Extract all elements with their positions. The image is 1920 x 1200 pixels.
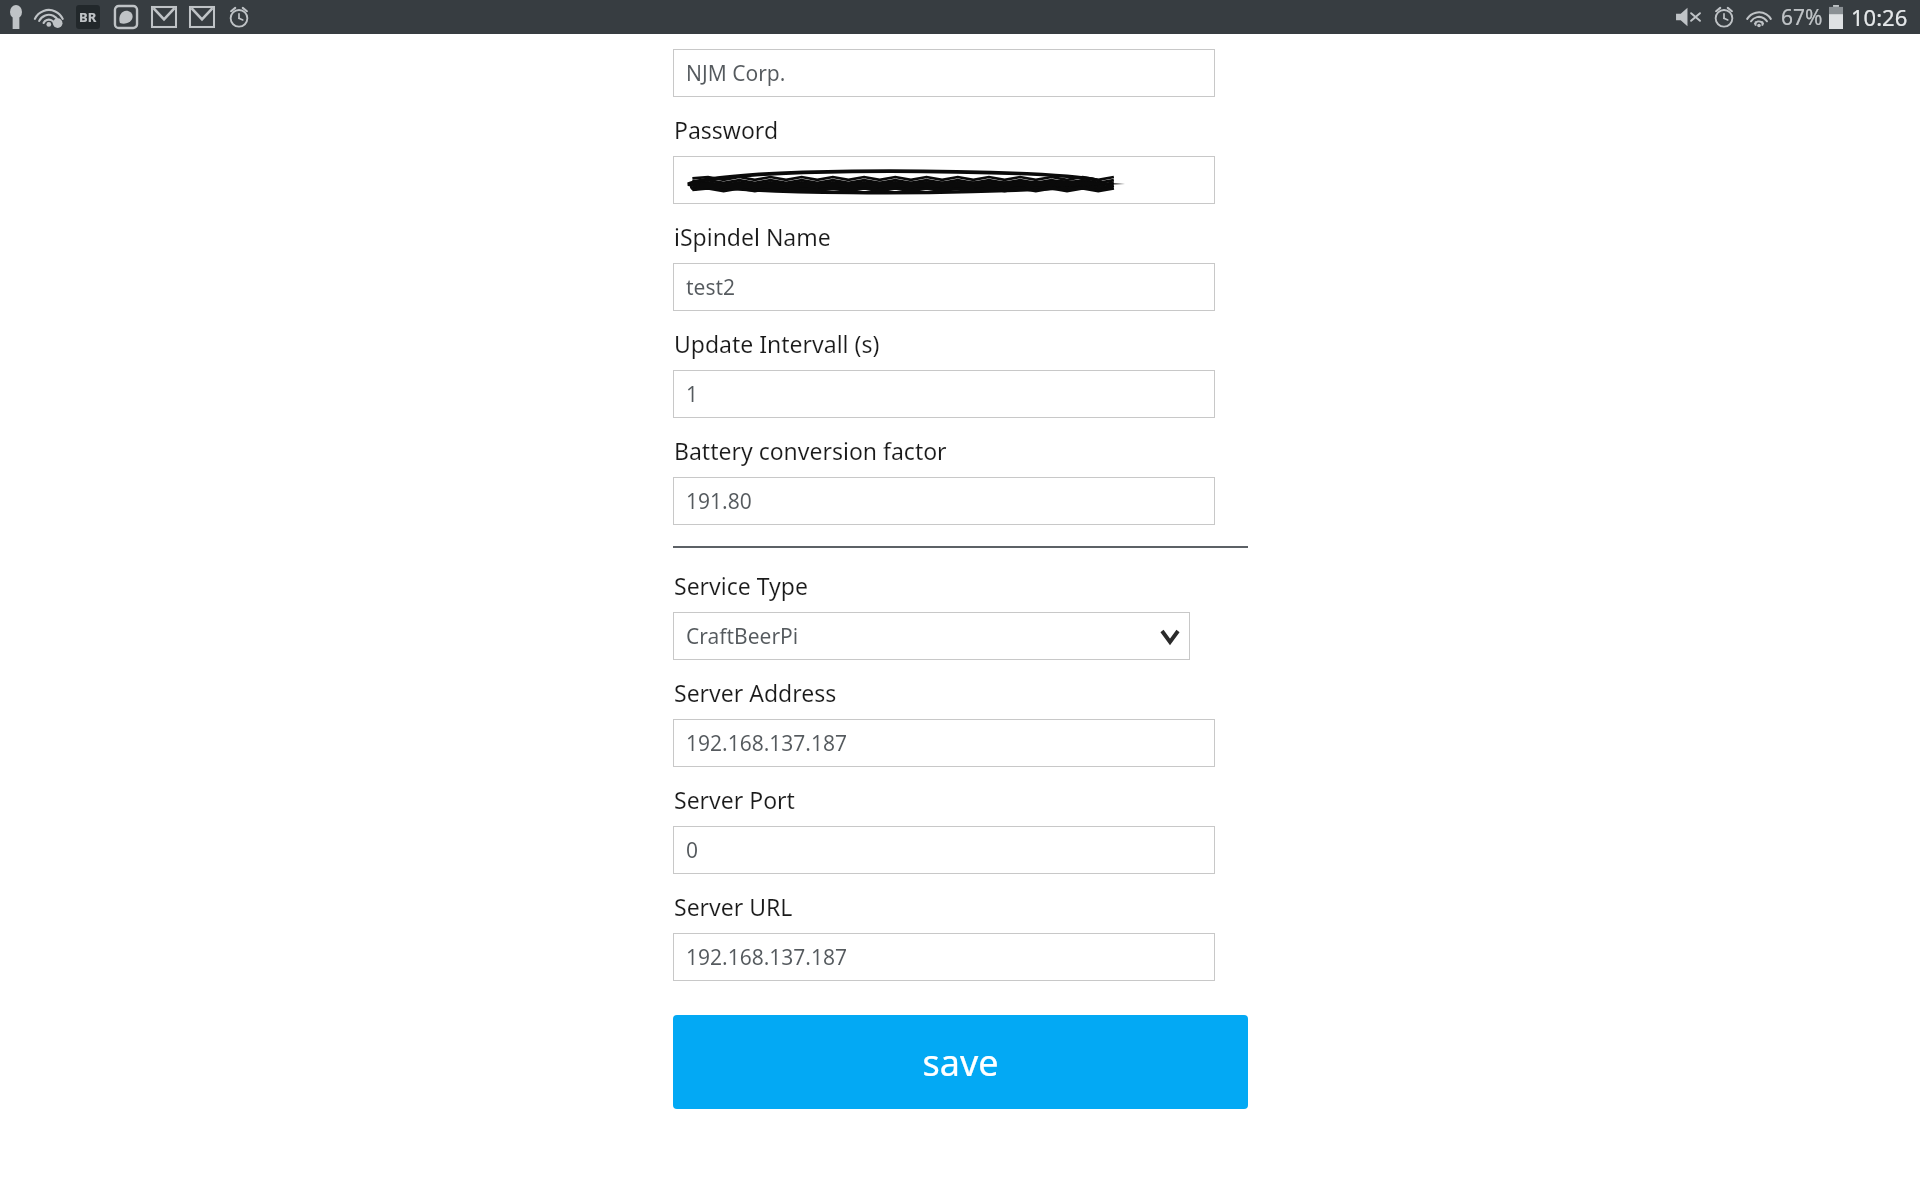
button[interactable]: Service Type dropdown: [673, 612, 1190, 660]
staticText: Password: [674, 114, 779, 145]
staticText: 192.168.137.187: [686, 729, 848, 758]
button[interactable]: test2: [673, 263, 1215, 311]
button[interactable]: 192.168.137.187: [673, 933, 1215, 981]
staticText: Update Intervall (s): [674, 328, 880, 359]
staticText: iSpindel Name: [674, 221, 831, 252]
staticText: Server Port: [674, 784, 795, 815]
button[interactable]: 0: [673, 826, 1215, 874]
staticText: 67%: [1781, 3, 1823, 32]
staticText: save: [922, 1038, 999, 1087]
staticText: NJM Corp.: [686, 59, 786, 88]
staticText: test2: [686, 273, 736, 302]
button[interactable]: [673, 156, 1215, 204]
button[interactable]: 1: [673, 370, 1215, 418]
button[interactable]: 191.80: [673, 477, 1215, 525]
staticText: 191.80: [686, 487, 752, 516]
button[interactable]: save: [673, 1015, 1248, 1109]
button[interactable]: 192.168.137.187: [673, 719, 1215, 767]
staticText: Server URL: [674, 891, 793, 922]
staticText: Battery conversion factor: [674, 435, 947, 466]
staticText: 10:26: [1851, 2, 1908, 32]
staticText: Server Address: [674, 677, 837, 708]
button[interactable]: NJM Corp.: [673, 49, 1215, 97]
staticText: CraftBeerPi: [686, 622, 799, 651]
staticText: 1: [686, 380, 699, 409]
staticText: Service Type: [674, 570, 808, 601]
staticText: BR: [79, 8, 97, 26]
staticText: 0: [686, 836, 699, 865]
staticText: 192.168.137.187: [686, 943, 848, 972]
